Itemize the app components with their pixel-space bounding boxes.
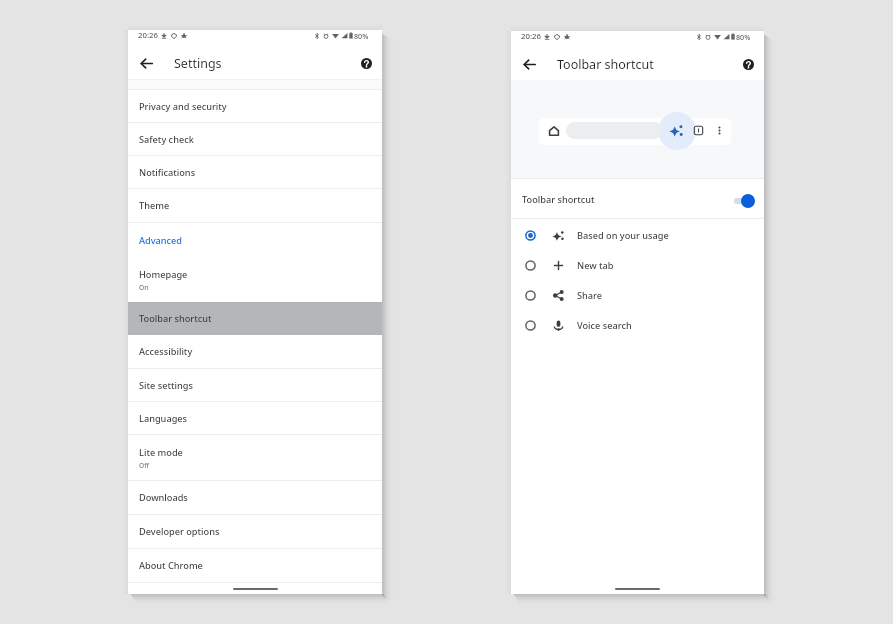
button[interactable]: Toolbar shortcut bbox=[128, 302, 382, 335]
staticText: Based on your usage bbox=[577, 229, 669, 242]
staticText: 80% bbox=[736, 32, 751, 42]
button[interactable]: Privacy and security bbox=[128, 90, 382, 122]
button[interactable]: Notifications bbox=[128, 156, 382, 188]
staticText: On bbox=[139, 283, 149, 292]
staticText: Toolbar shortcut bbox=[557, 56, 654, 73]
button[interactable]: Voice search bbox=[511, 310, 764, 340]
staticText: Theme bbox=[139, 199, 170, 212]
button[interactable]: Downloads bbox=[128, 481, 382, 514]
staticText: Developer options bbox=[139, 525, 220, 538]
button[interactable]: New tab bbox=[511, 250, 764, 280]
button[interactable]: Site settings bbox=[128, 369, 382, 401]
button[interactable]: Homepage bbox=[128, 257, 382, 302]
button[interactable]: Back bbox=[511, 49, 547, 80]
staticText: 80% bbox=[354, 31, 369, 41]
button[interactable]: Languages bbox=[128, 402, 382, 434]
staticText: Toolbar shortcut bbox=[139, 312, 212, 325]
staticText: Safety check bbox=[139, 133, 194, 146]
button[interactable]: Safety check bbox=[128, 123, 382, 155]
staticText: 20:26 bbox=[521, 31, 541, 42]
button[interactable]: About Chrome bbox=[128, 549, 382, 582]
staticText: About Chrome bbox=[139, 559, 203, 572]
staticText: Site settings bbox=[139, 379, 193, 392]
staticText: Notifications bbox=[139, 166, 196, 179]
button[interactable]: Toolbar shortcut bbox=[511, 179, 764, 218]
button[interactable]: Share bbox=[511, 280, 764, 310]
staticText: Privacy and security bbox=[139, 100, 227, 113]
staticText: New tab bbox=[577, 259, 614, 272]
button[interactable]: Theme bbox=[128, 189, 382, 222]
button[interactable]: Based on your usage bbox=[511, 220, 764, 250]
staticText: Accessibility bbox=[139, 345, 193, 358]
staticText: Lite mode bbox=[139, 446, 183, 459]
staticText: Downloads bbox=[139, 491, 188, 504]
button[interactable]: Lite mode bbox=[128, 435, 382, 480]
button[interactable]: Help bbox=[733, 49, 764, 80]
button[interactable]: Developer options bbox=[128, 515, 382, 548]
button[interactable]: Back bbox=[128, 48, 164, 79]
staticText: 20:26 bbox=[138, 30, 158, 41]
button[interactable]: Accessibility bbox=[128, 335, 382, 368]
staticText: Languages bbox=[139, 412, 188, 425]
staticText: Share bbox=[577, 289, 603, 302]
staticText: Voice search bbox=[577, 319, 632, 332]
staticText: Homepage bbox=[139, 268, 188, 281]
staticText: Toolbar shortcut bbox=[522, 193, 595, 206]
button[interactable]: Advanced bbox=[128, 223, 382, 257]
staticText: Off bbox=[139, 461, 149, 470]
staticText: Settings bbox=[174, 55, 222, 72]
button[interactable]: Help bbox=[351, 48, 382, 79]
staticText: Advanced bbox=[139, 234, 183, 247]
